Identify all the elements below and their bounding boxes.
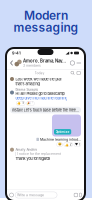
staticText: 👍 2 [65,143,72,146]
staticText: Last week we made the plan [15,77,62,81]
button[interactable]: Video call [69,58,76,68]
staticText: I notice for the replacement [17,152,61,156]
button[interactable]: Back [9,58,14,68]
button[interactable]: Search [70,70,76,76]
staticText: Today [35,71,45,75]
button[interactable]: Voice message [79,193,81,197]
staticText: 🎉 1 [27,102,33,105]
staticText: that's amazing! [15,81,40,86]
staticText: Write a message [17,193,44,197]
staticText: 3 members [23,63,41,68]
staticText: Amoro, Brama, Nay… [23,58,66,63]
button[interactable]: Optimize [54,129,71,134]
staticText: Hi all! Please go to basecamp [15,91,64,96]
staticText: 9:41 [12,51,21,55]
staticText: messaging [13,20,78,34]
staticText: deep dive into machine learning [15,96,67,100]
staticText: Install! Let's touch base before the mee… [12,108,79,112]
staticText: Machine learning introd… [40,137,81,141]
staticText: Brama Surapto [15,87,38,91]
staticText: Thank you for regards [15,156,50,161]
staticText: Amaly Andrini [15,148,37,152]
button[interactable]: Calendar [76,70,81,76]
staticText: Modern [24,8,68,22]
staticText: Optimize [56,130,70,134]
button[interactable]: Details [76,58,82,68]
staticText: 😀 [58,143,62,146]
staticText: 👍 2 [17,102,24,105]
staticText: ❤ 1 [75,143,80,146]
button[interactable]: Add attachment [9,193,13,197]
button[interactable]: Photos [74,193,78,197]
